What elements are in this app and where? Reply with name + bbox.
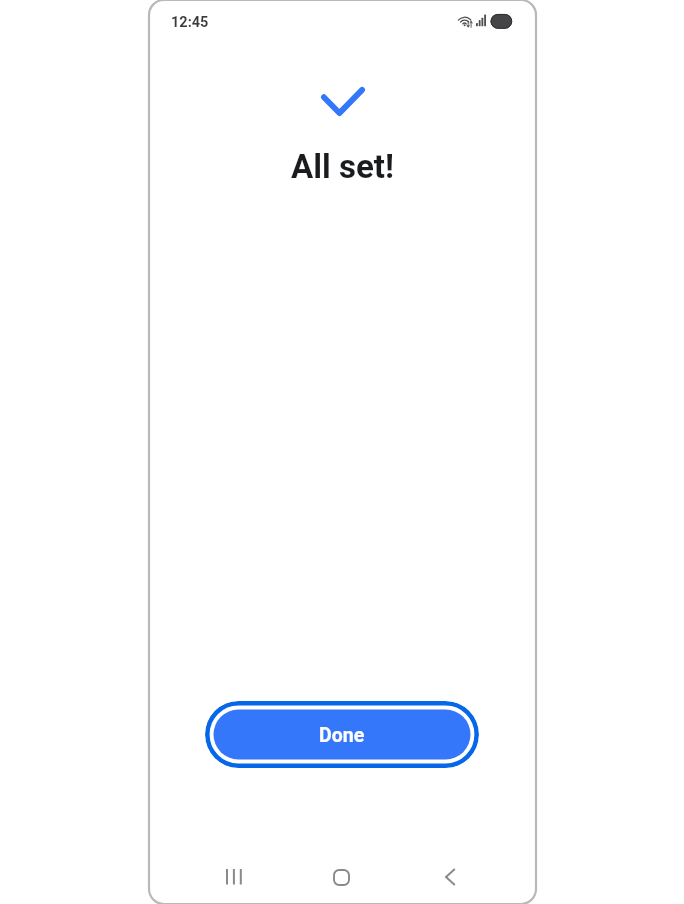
button[interactable]: Recent apps [203, 858, 263, 896]
button[interactable]: Back [420, 858, 480, 896]
button[interactable]: Done [205, 701, 479, 768]
staticText: 12:45 [171, 14, 209, 31]
staticText: Done [319, 724, 365, 747]
staticText: All set! [291, 147, 394, 186]
button[interactable]: Home [311, 858, 371, 896]
